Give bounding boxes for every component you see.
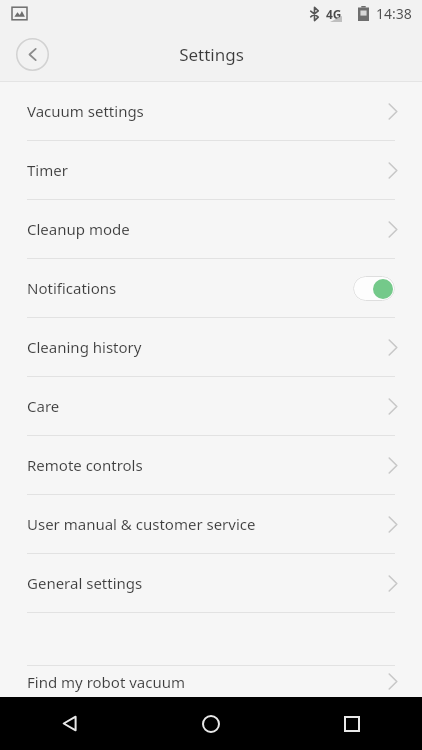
button[interactable]: Notifications	[0, 259, 422, 317]
button[interactable]: User manual & customer service	[0, 495, 422, 553]
staticText: Notifications	[27, 278, 353, 298]
staticText: Find my robot vacuum	[27, 672, 388, 692]
staticText: Cleanup mode	[27, 219, 388, 239]
staticText: General settings	[27, 573, 388, 593]
staticText: Cleaning history	[27, 337, 388, 357]
button[interactable]: Home	[140, 697, 281, 750]
button[interactable]: Cleaning history	[0, 318, 422, 376]
button[interactable]: Find my robot vacuum	[0, 666, 422, 697]
staticText: Remote controls	[27, 455, 388, 475]
button[interactable]: General settings	[0, 554, 422, 612]
button[interactable]: Back	[0, 697, 140, 750]
button[interactable]: Cleanup mode	[0, 200, 422, 258]
staticText: User manual & customer service	[27, 514, 388, 534]
staticText: Care	[27, 396, 388, 416]
staticText: Settings	[179, 43, 244, 66]
button[interactable]: Timer	[0, 141, 422, 199]
button[interactable]: Recent apps	[281, 697, 422, 750]
staticText: 4G	[326, 6, 342, 22]
staticText: Timer	[27, 160, 388, 180]
button[interactable]: Back	[10, 32, 54, 76]
button[interactable]: Care	[0, 377, 422, 435]
staticText: 14:38	[376, 4, 412, 23]
staticText: Vacuum settings	[27, 101, 388, 121]
button[interactable]: Remote controls	[0, 436, 422, 494]
button[interactable]: Vacuum settings	[0, 82, 422, 140]
